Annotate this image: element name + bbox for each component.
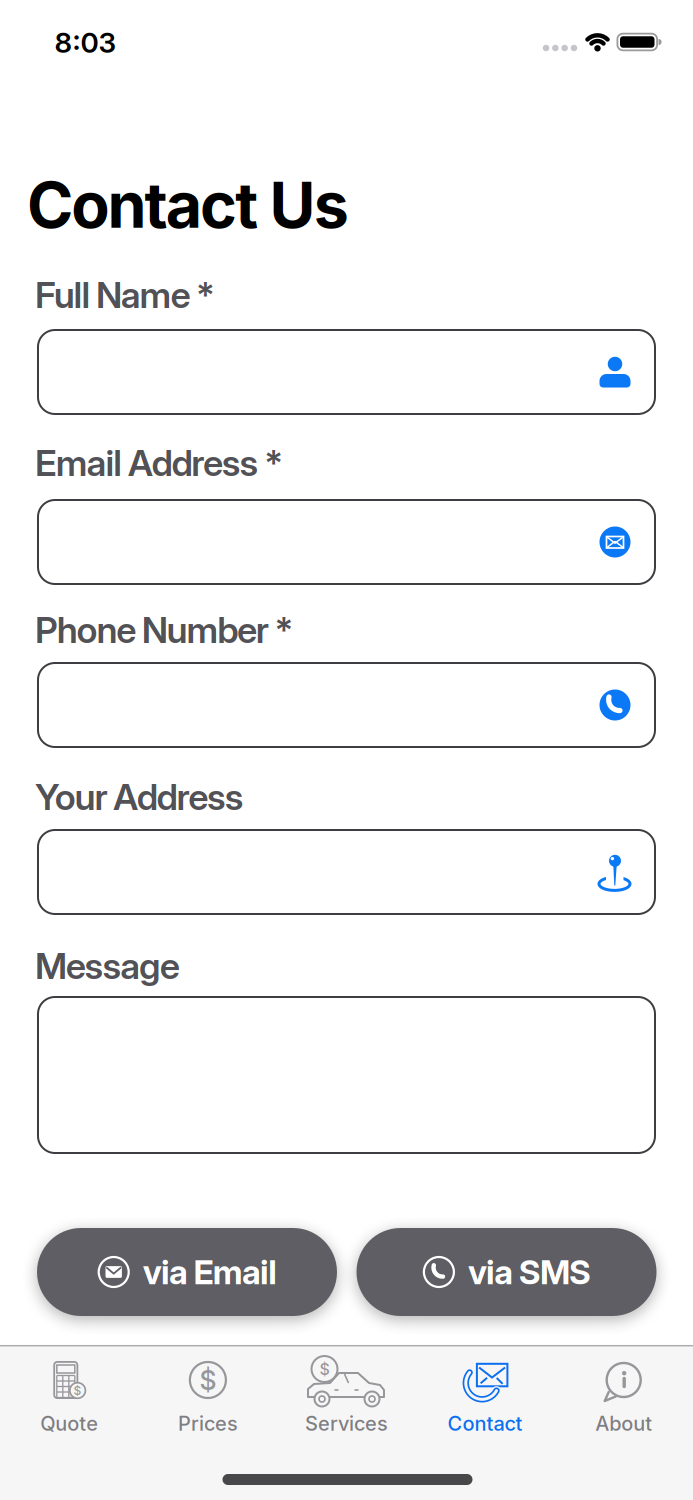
staticText: Contact Us (27, 168, 349, 242)
staticText: 8:03 (54, 26, 116, 59)
button[interactable]: Message (37, 996, 656, 1154)
button[interactable]: Quote (0, 1346, 138, 1500)
staticText: Prices (178, 1412, 238, 1435)
staticText: via SMS (468, 1252, 591, 1292)
staticText: $ (74, 1384, 82, 1398)
button[interactable]: Email Address (37, 499, 656, 585)
button[interactable]: via SMS (356, 1228, 656, 1316)
button[interactable]: via Email (37, 1228, 337, 1316)
staticText: Message (35, 945, 180, 987)
staticText: Full Name * (35, 274, 215, 316)
staticText: via Email (143, 1252, 277, 1292)
button[interactable]: Phone Number (37, 662, 656, 748)
staticText: Contact (448, 1412, 523, 1435)
staticText: Email Address * (35, 442, 283, 484)
staticText: Quote (40, 1412, 98, 1435)
staticText: Phone Number * (35, 609, 293, 651)
button[interactable]: Full Name (37, 329, 656, 415)
staticText: $ (199, 1365, 216, 1396)
button[interactable]: Services (277, 1346, 415, 1500)
button[interactable]: About (555, 1346, 693, 1500)
staticText: Services (305, 1412, 388, 1435)
button[interactable]: Your Address (37, 829, 656, 915)
staticText: About (595, 1412, 652, 1435)
button[interactable]: Contact (416, 1346, 554, 1500)
staticText: Your Address (35, 776, 244, 818)
staticText: $ (319, 1360, 329, 1379)
button[interactable]: Prices (139, 1346, 277, 1500)
